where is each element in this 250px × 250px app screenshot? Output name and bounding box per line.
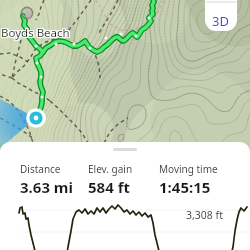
staticText: 1:45:15 bbox=[159, 177, 211, 197]
staticText: Boyds Beach bbox=[1, 25, 70, 41]
staticText: Boyds Beach bbox=[2, 26, 71, 42]
staticText: 3,308 ft bbox=[186, 208, 223, 222]
staticText: Boyds Beach bbox=[2, 24, 71, 40]
staticText: Elev. gain bbox=[88, 162, 133, 176]
staticText: Boyds Beach bbox=[1, 24, 70, 40]
staticText: Boyds Beach bbox=[0, 24, 69, 40]
staticText: Boyds Beach bbox=[0, 26, 69, 42]
staticText: 3.63 mi bbox=[20, 177, 73, 197]
staticText: Moving time bbox=[159, 162, 218, 176]
staticText: 3D bbox=[212, 12, 229, 30]
staticText: Boyds Beach bbox=[0, 25, 69, 41]
staticText: 584 ft bbox=[88, 177, 130, 197]
button[interactable]: Toggle 3D map view bbox=[205, 0, 237, 31]
staticText: Boyds Beach bbox=[2, 25, 71, 41]
staticText: Boyds Beach bbox=[1, 26, 70, 42]
staticText: Distance bbox=[20, 162, 61, 176]
